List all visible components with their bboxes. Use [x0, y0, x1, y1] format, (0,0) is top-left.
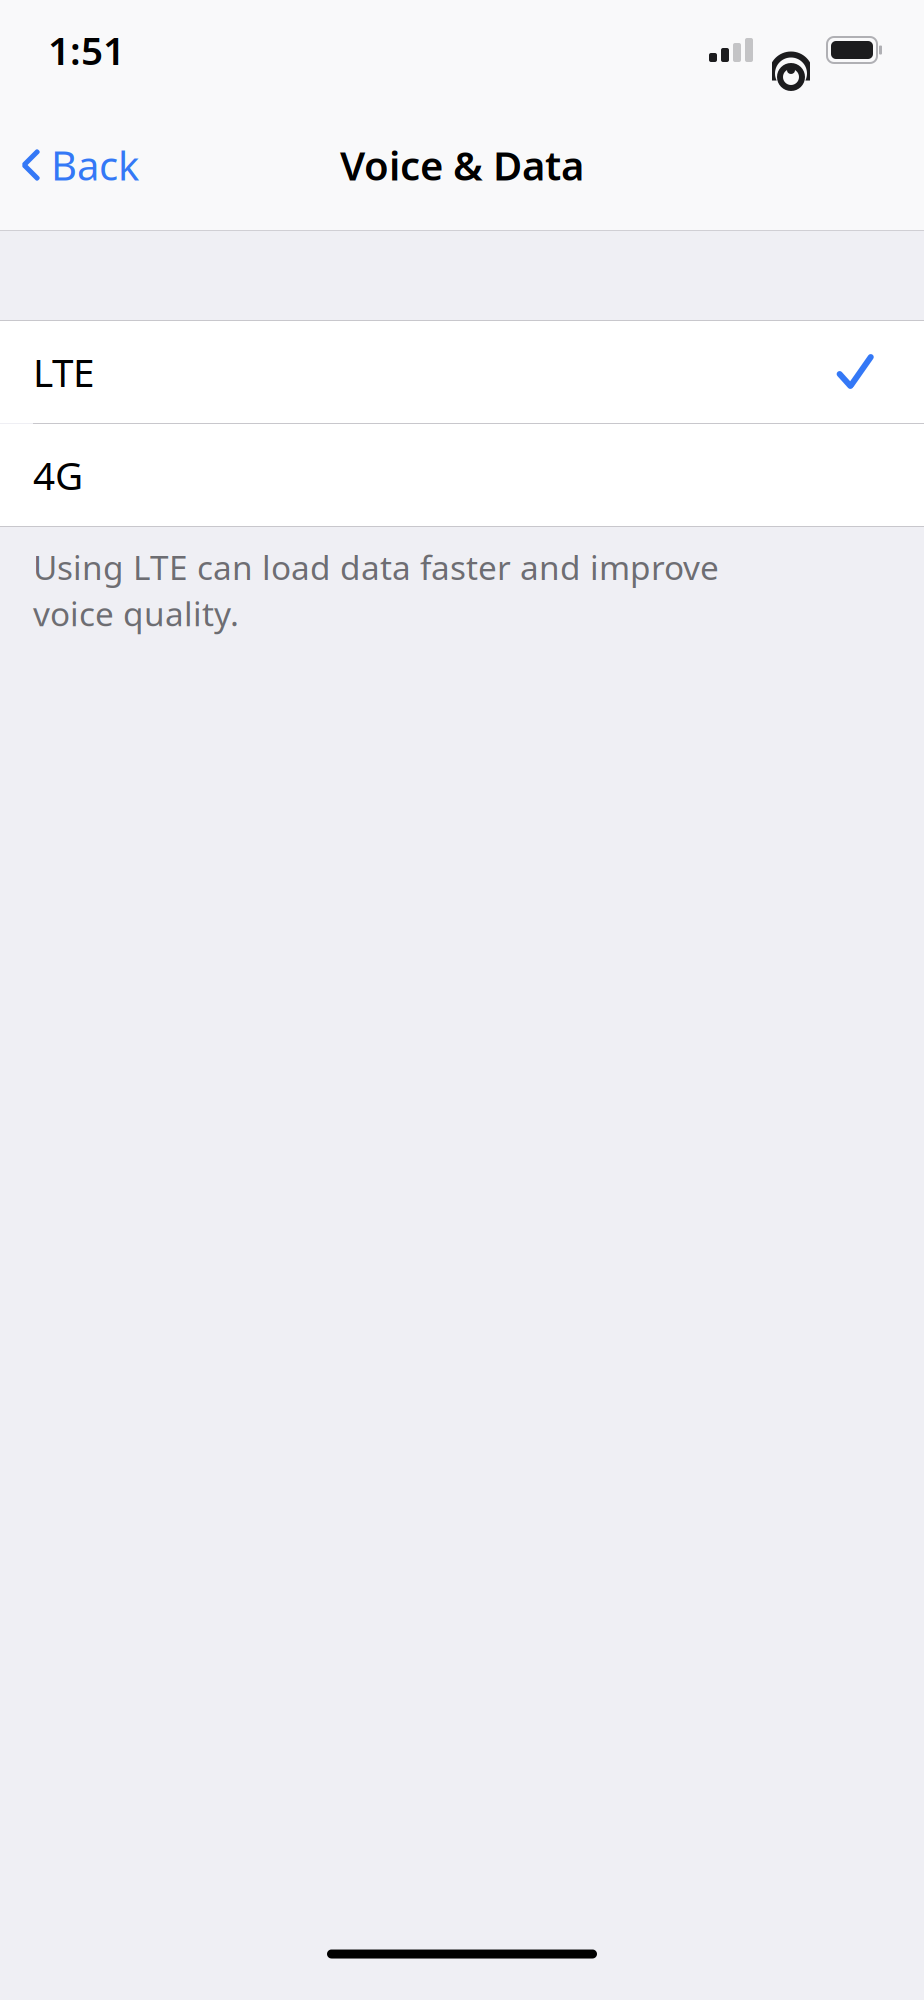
staticText: 4G	[33, 449, 83, 501]
staticText: Using LTE can load data faster and impro…	[33, 545, 719, 589]
staticText: Voice & Data	[340, 138, 584, 191]
button[interactable]: Back	[0, 128, 139, 201]
staticText: LTE	[33, 346, 94, 398]
button[interactable]: 4G	[0, 424, 924, 526]
button[interactable]: LTE	[0, 321, 924, 423]
staticText: 1:51	[48, 24, 125, 76]
staticText: voice quality.	[33, 591, 239, 636]
staticText: Back	[51, 138, 139, 191]
